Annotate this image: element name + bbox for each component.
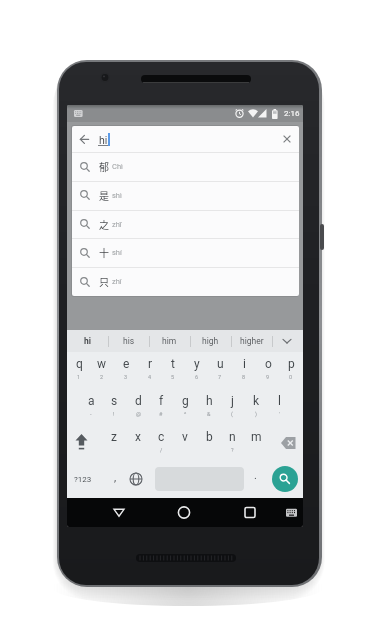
button[interactable] (244, 425, 268, 462)
staticText: 0 (289, 374, 293, 380)
button[interactable] (138, 352, 162, 389)
button[interactable] (209, 352, 233, 389)
button[interactable] (172, 502, 196, 523)
staticText: 2:16 (284, 109, 300, 118)
staticText: 1 (77, 374, 81, 380)
button[interactable] (70, 425, 97, 462)
button[interactable] (67, 462, 99, 499)
button[interactable] (185, 352, 209, 389)
staticText: d (135, 394, 142, 408)
staticText: b (206, 430, 213, 444)
staticText: i (243, 357, 246, 371)
staticText: 2 (100, 374, 104, 380)
staticText: / (160, 447, 163, 453)
button[interactable] (232, 352, 256, 389)
staticText: & (207, 411, 211, 417)
button[interactable]: higher (231, 330, 272, 352)
button[interactable] (197, 389, 221, 426)
button[interactable] (281, 133, 293, 145)
button[interactable] (72, 238, 299, 267)
staticText: u (217, 357, 224, 371)
staticText: n (229, 430, 236, 444)
button[interactable] (72, 267, 299, 296)
button[interactable] (197, 425, 221, 462)
staticText: r (148, 357, 153, 371)
button[interactable] (102, 425, 126, 462)
staticText: v (182, 430, 188, 444)
staticText: 之 (99, 217, 109, 231)
staticText: y (194, 357, 200, 371)
staticText: q (76, 357, 83, 371)
staticText: him (162, 336, 177, 346)
staticText: 9 (266, 374, 270, 380)
button[interactable] (273, 425, 303, 462)
staticText: ) (255, 411, 257, 417)
staticText: k (253, 394, 260, 408)
button[interactable] (220, 425, 244, 462)
staticText: j (231, 394, 234, 408)
staticText: his (123, 336, 135, 346)
button[interactable] (126, 389, 150, 426)
staticText: zhǐ (112, 277, 122, 286)
button[interactable] (128, 471, 144, 487)
button[interactable] (268, 389, 292, 426)
button[interactable] (173, 425, 197, 462)
button[interactable] (72, 126, 299, 152)
staticText: 3 (124, 374, 128, 380)
button[interactable] (238, 502, 262, 523)
staticText: ^ (184, 411, 187, 417)
button[interactable] (256, 352, 280, 389)
button[interactable] (244, 389, 268, 426)
button[interactable]: high (190, 330, 231, 352)
staticText: o (265, 357, 272, 371)
button[interactable] (173, 389, 197, 426)
button[interactable] (107, 502, 131, 523)
button[interactable] (220, 389, 244, 426)
button[interactable] (150, 389, 174, 426)
staticText: shí (112, 248, 122, 257)
button[interactable] (91, 352, 115, 389)
button[interactable] (161, 352, 185, 389)
staticText: , (114, 471, 117, 484)
staticText: s (111, 394, 118, 408)
button[interactable] (280, 337, 294, 346)
button[interactable] (279, 352, 303, 389)
button[interactable] (248, 462, 266, 499)
staticText: f (159, 394, 164, 408)
staticText: z (111, 430, 117, 444)
button[interactable] (79, 134, 90, 145)
staticText: . (254, 469, 257, 482)
button[interactable] (150, 425, 174, 462)
button[interactable] (102, 389, 126, 426)
staticText: ? (231, 447, 234, 453)
staticText: p (288, 357, 295, 371)
staticText: ( (231, 411, 233, 417)
button[interactable] (114, 352, 138, 389)
staticText: 8 (242, 374, 246, 380)
button[interactable]: his (108, 330, 149, 352)
button[interactable] (79, 389, 103, 426)
staticText: ! (113, 411, 115, 417)
staticText: t (171, 357, 175, 371)
staticText: @ (136, 411, 141, 417)
button[interactable] (72, 152, 299, 181)
button[interactable]: hi (67, 330, 108, 352)
staticText: 4 (148, 374, 152, 380)
button[interactable] (67, 352, 91, 389)
button[interactable] (105, 462, 125, 499)
staticText: ?123 (74, 475, 92, 484)
button[interactable] (72, 210, 299, 239)
staticText: m (251, 430, 262, 444)
button[interactable] (272, 466, 298, 492)
staticText: higher (240, 336, 264, 346)
staticText: e (123, 357, 130, 371)
staticText: # (159, 411, 163, 417)
button[interactable] (72, 181, 299, 210)
staticText: 郁 (99, 159, 109, 173)
button[interactable] (285, 503, 299, 522)
staticText: 6 (195, 374, 199, 380)
button[interactable] (126, 425, 150, 462)
staticText: 是 (99, 188, 109, 202)
button[interactable]: him (149, 330, 190, 352)
